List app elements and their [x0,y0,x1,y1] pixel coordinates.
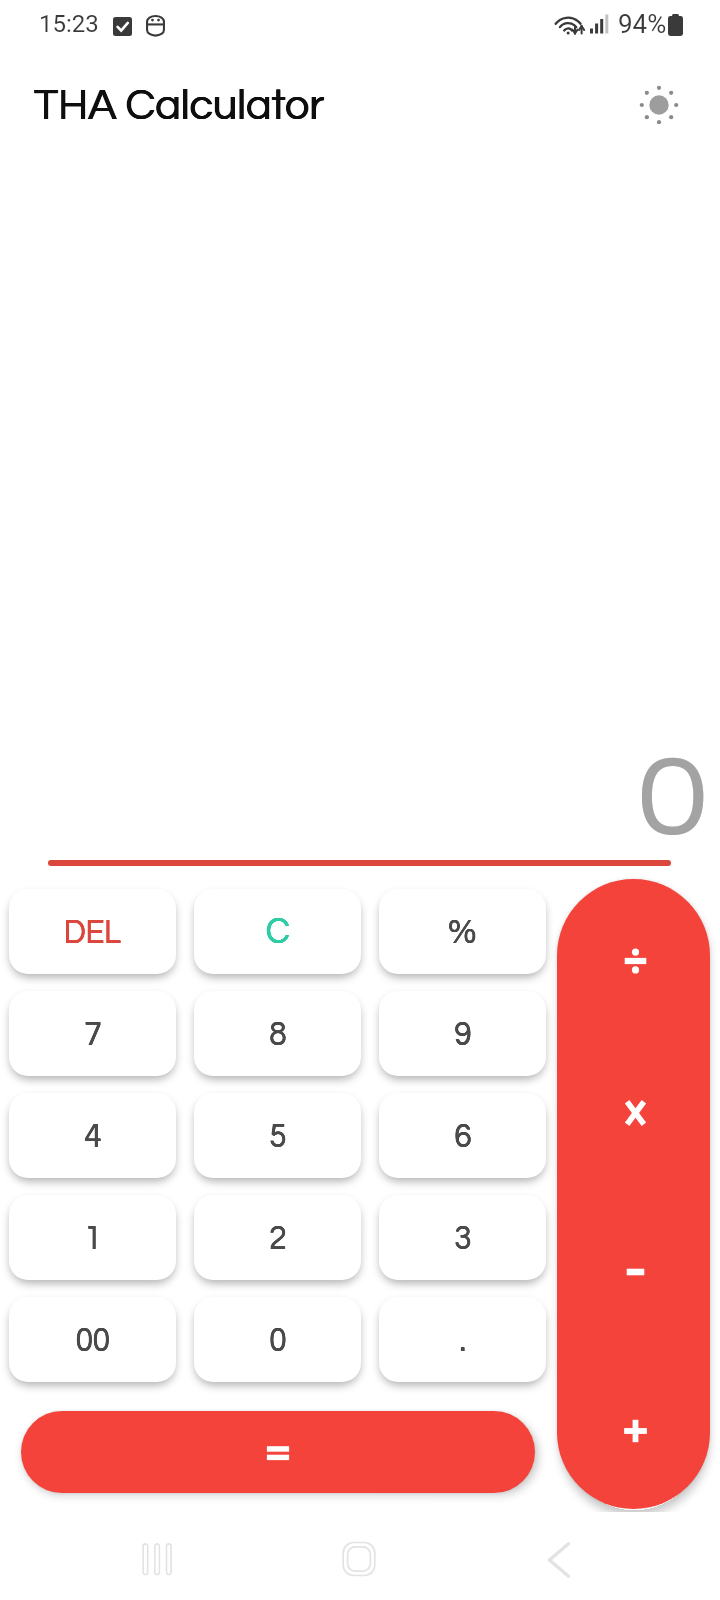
button[interactable]: Subtract [557,1212,710,1332]
staticText: 7 [84,1015,102,1052]
staticText: 5 [269,1117,287,1154]
staticText: 9 [454,1015,472,1052]
staticText: 8 [269,1015,287,1052]
staticText: 94% [618,9,667,39]
button[interactable]: 7 [9,991,176,1076]
staticText: 3 [455,1219,472,1256]
staticText: 8 [269,1015,287,1052]
button[interactable]: 6 [379,1093,546,1178]
staticText: 9 [454,1015,472,1052]
button[interactable]: 3 [379,1195,546,1280]
staticText: 9 [455,1015,472,1052]
button[interactable]: 4 [9,1093,176,1178]
staticText: 00 [75,1321,110,1358]
button[interactable]: 2 [194,1195,361,1280]
staticText: 4 [84,1117,101,1154]
button[interactable]: 0 [194,1297,361,1382]
staticText: 6 [454,1117,472,1154]
staticText: 4 [84,1117,102,1154]
staticText: 1 [84,1219,102,1256]
staticText: 7 [84,1015,101,1052]
staticText: 0 [269,1321,287,1358]
staticText: THA Calculator [34,83,325,128]
button[interactable]: C [194,889,361,974]
staticText: C [266,913,290,951]
staticText: THA Calculator [33,83,324,128]
staticText: 2 [269,1219,286,1256]
staticText: 8 [270,1015,287,1052]
staticText: % [448,913,477,950]
staticText: DEL [63,914,121,950]
staticText: 0 [269,1321,286,1358]
staticText: . [460,1321,466,1358]
staticText: 3 [454,1219,472,1256]
staticText: . [460,1321,466,1358]
staticText: 5 [269,1117,286,1154]
staticText: . [460,1321,467,1358]
button[interactable]: Add [557,1371,710,1491]
button[interactable]: 5 [194,1093,361,1178]
staticText: THA Calculator [34,83,325,128]
staticText: 00 [76,1321,110,1358]
button[interactable]: % [379,889,546,974]
staticText: 6 [454,1117,472,1154]
staticText: 0 [270,1321,287,1358]
staticText: 3 [454,1219,471,1256]
staticText: % [448,913,476,950]
staticText: 4 [84,1117,102,1154]
staticText: 1 [85,1219,102,1256]
staticText: 6 [454,1117,471,1154]
staticText: % [448,913,477,950]
staticText: 9 [454,1015,472,1052]
staticText: 4 [84,1117,102,1154]
staticText: 00 [76,1321,111,1358]
staticText: 0 [269,1321,287,1358]
staticText: 8 [269,1015,287,1052]
staticText: 1 [84,1219,102,1256]
staticText: 00 [76,1321,110,1358]
staticText: 2 [270,1219,287,1256]
button[interactable]: 9 [379,991,546,1076]
button[interactable] [21,1411,535,1493]
button[interactable]: . [379,1297,546,1382]
staticText: C [266,913,290,951]
button[interactable]: DEL [9,889,176,974]
staticText: DEL [64,914,121,950]
staticText: 8 [269,1015,286,1052]
staticText: 4 [85,1117,102,1154]
staticText: 3 [454,1219,472,1256]
button[interactable]: Home [329,1529,389,1589]
staticText: DEL [64,914,121,950]
button[interactable]: Multiply [557,1053,710,1173]
staticText: 5 [269,1117,287,1154]
staticText: % [448,913,477,950]
staticText: 00 [76,1321,110,1358]
staticText: 6 [454,1117,472,1154]
staticText: % [448,913,477,950]
staticText: DEL [64,914,121,950]
staticText: 5 [270,1117,287,1154]
button[interactable]: Back [529,1530,589,1590]
button[interactable]: Recent apps [127,1529,187,1589]
staticText: 0 [269,1321,287,1358]
button[interactable]: 00 [9,1297,176,1382]
button[interactable]: 8 [194,991,361,1076]
staticText: 15:23 [39,10,99,38]
staticText: 2 [269,1219,287,1256]
staticText: 7 [85,1015,102,1052]
staticText: 6 [455,1117,472,1154]
staticText: 7 [84,1015,102,1052]
staticText: 1 [84,1219,102,1256]
button[interactable]: 1 [9,1195,176,1280]
staticText: THA Calculator [35,83,325,128]
staticText: . [459,1321,466,1358]
button[interactable]: Toggle dark mode [629,75,689,135]
staticText: C [266,913,290,951]
staticText: 5 [269,1117,287,1154]
staticText: 7 [84,1015,102,1052]
staticText: 2 [269,1219,287,1256]
button[interactable]: Divide [557,901,710,1021]
staticText: C [265,913,290,951]
staticText: . [460,1321,466,1358]
staticText: 9 [454,1015,471,1052]
